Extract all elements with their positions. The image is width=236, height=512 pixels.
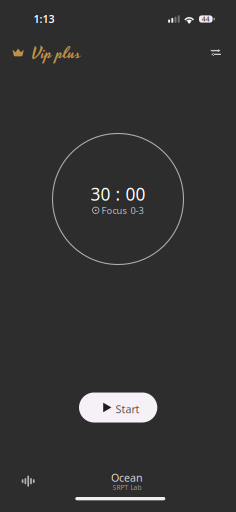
staticText: SRPT Lab: [112, 483, 141, 492]
staticText: Focus 0-3: [101, 204, 143, 216]
staticText: Start: [115, 402, 139, 416]
button[interactable]: Start: [79, 392, 157, 422]
staticText: Vip plus: [31, 40, 80, 66]
staticText: Ocean: [111, 470, 143, 485]
button[interactable]: Sound: [17, 470, 39, 492]
button[interactable]: Vip plus: [9, 41, 95, 67]
staticText: 44: [202, 15, 210, 23]
staticText: 1:13: [34, 12, 55, 26]
staticText: 30 : 00: [90, 182, 145, 205]
button[interactable]: Swap: [206, 44, 226, 61]
